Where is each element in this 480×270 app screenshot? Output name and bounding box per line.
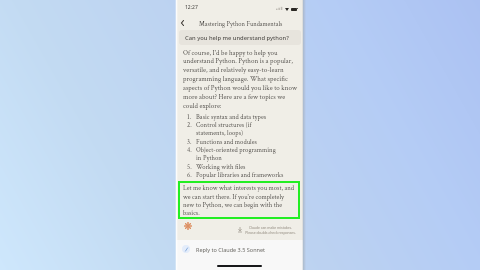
staticText: 5. [187,163,192,172]
staticText: Of course, I'd be happy to help you unde… [183,48,299,111]
staticText: 4. [187,146,192,155]
button[interactable]: Can you help me understand python? [179,30,301,45]
button[interactable]: Reply to Claude 3.5 Sonnet [182,242,297,256]
staticText: 1. [187,113,191,122]
staticText: Can you help me understand python? [185,34,289,42]
staticText: Claude can make mistakes. Please double-… [245,225,296,235]
staticText: statements, loops) [196,129,244,138]
button[interactable]: Claude [184,222,192,230]
staticText: Control structures (if [196,121,252,130]
staticText: new to Python, we can begin with the [183,201,283,210]
button[interactable]: Info [238,227,242,232]
staticText: 2. [187,121,192,130]
staticText: basics. [183,209,200,218]
staticText: Working with files [196,163,246,172]
staticText: Basic syntax and data types [196,113,267,122]
staticText: 12:27 [185,4,198,11]
staticText: Functions and modules [196,138,257,147]
staticText: Reply to Claude 3.5 Sonnet [196,246,266,253]
staticText: in Python [196,154,222,163]
button[interactable]: Let me know what interests you most, and [178,181,300,219]
staticText: 3. [187,138,192,147]
staticText: Let me know what interests you most, and [183,184,295,193]
staticText: we can start there. If you're completely [183,193,285,202]
staticText: Mastering Python Fundamentals [199,20,283,28]
button[interactable]: Back [176,16,189,29]
staticText: Popular libraries and frameworks [196,171,284,180]
staticText: Object-oriented programming [196,146,276,155]
staticText: 6. [187,171,192,180]
